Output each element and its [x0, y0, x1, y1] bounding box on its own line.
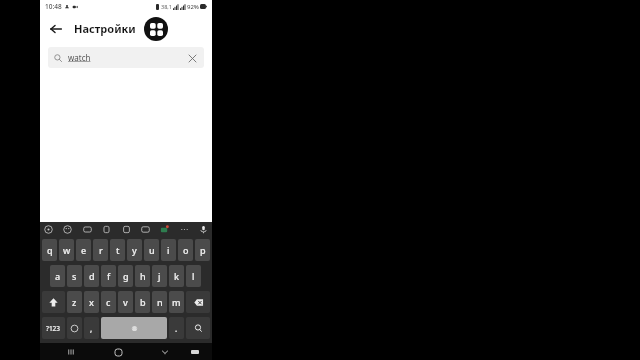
staticText: e	[81, 244, 87, 256]
button[interactable]: Search	[186, 317, 210, 339]
button[interactable]: Clipboard	[44, 225, 53, 234]
staticText: 92%	[187, 3, 199, 11]
button[interactable]: More	[180, 225, 189, 234]
staticText: m	[172, 296, 181, 308]
button[interactable]: Theme	[122, 225, 131, 234]
button[interactable]: Home	[110, 344, 126, 360]
staticText: c	[106, 296, 111, 308]
staticText: a	[55, 270, 61, 282]
staticText: k	[174, 270, 180, 282]
staticText: o	[183, 244, 189, 256]
staticText: 10:48	[45, 2, 62, 11]
button[interactable]: Voice input	[199, 225, 208, 234]
button[interactable]: GIF	[83, 225, 92, 234]
button[interactable]: m	[169, 291, 184, 313]
staticText: p	[200, 244, 206, 256]
button[interactable]: Keyboard	[187, 344, 203, 360]
button[interactable]: a	[50, 265, 65, 287]
button[interactable]: j	[152, 265, 167, 287]
button[interactable]: o	[178, 239, 193, 261]
staticText: 38,1	[161, 3, 172, 10]
button[interactable]: z	[67, 291, 82, 313]
button[interactable]: q	[42, 239, 57, 261]
button[interactable]: e	[76, 239, 91, 261]
button[interactable]: Backspace	[186, 291, 210, 313]
button[interactable]: i	[161, 239, 176, 261]
button[interactable]: Emoji	[67, 317, 82, 339]
button[interactable]: y	[127, 239, 142, 261]
staticText: ,	[90, 323, 93, 334]
button[interactable]: w	[59, 239, 74, 261]
button[interactable]: Back	[46, 19, 66, 39]
button[interactable]: k	[169, 265, 184, 287]
button[interactable]: Emoji	[63, 225, 72, 234]
staticText: l	[192, 270, 195, 282]
button[interactable]: Hide keyboard	[157, 344, 173, 360]
staticText: w	[63, 244, 71, 256]
staticText: .	[175, 323, 178, 334]
button[interactable]: Clear	[186, 52, 198, 64]
button[interactable]: n	[152, 291, 167, 313]
staticText: v	[123, 296, 128, 308]
button[interactable]: Shift	[42, 291, 65, 313]
button[interactable]: f	[101, 265, 116, 287]
staticText: x	[89, 296, 94, 308]
staticText: d	[89, 270, 95, 282]
button[interactable]: t	[110, 239, 125, 261]
staticText: g	[123, 270, 129, 282]
button[interactable]: Recents	[63, 344, 79, 360]
staticText: t	[116, 244, 120, 256]
staticText: i	[167, 244, 170, 256]
button[interactable]: Translate	[141, 225, 150, 234]
button[interactable]: Clipboard2	[102, 225, 111, 234]
staticText: y	[132, 244, 137, 256]
button[interactable]: l	[186, 265, 201, 287]
button[interactable]: c	[101, 291, 116, 313]
button[interactable]: u	[144, 239, 159, 261]
staticText: b	[140, 296, 146, 308]
button[interactable]: Space	[101, 317, 167, 339]
staticText: watch	[68, 52, 91, 63]
button[interactable]: Apps	[144, 17, 168, 41]
staticText: j	[158, 270, 161, 282]
staticText: h	[140, 270, 146, 282]
button[interactable]: x	[84, 291, 99, 313]
button[interactable]: s	[67, 265, 82, 287]
button[interactable]: v	[118, 291, 133, 313]
button[interactable]: watch	[48, 47, 204, 68]
button[interactable]: g	[118, 265, 133, 287]
button[interactable]: h	[135, 265, 150, 287]
staticText: Настройки	[74, 21, 136, 36]
button[interactable]: b	[135, 291, 150, 313]
staticText: f	[107, 270, 111, 282]
button[interactable]: ,	[84, 317, 99, 339]
staticText: s	[72, 270, 77, 282]
button[interactable]: d	[84, 265, 99, 287]
button[interactable]: r	[93, 239, 108, 261]
staticText: r	[99, 244, 103, 256]
button[interactable]: Camera	[160, 225, 169, 234]
button[interactable]: .	[169, 317, 184, 339]
staticText: q	[47, 244, 53, 256]
button[interactable]: p	[195, 239, 210, 261]
staticText: z	[72, 296, 77, 308]
staticText: ?123	[46, 324, 61, 333]
staticText: n	[157, 296, 163, 308]
staticText: u	[149, 244, 155, 256]
button[interactable]: ?123	[42, 317, 65, 339]
